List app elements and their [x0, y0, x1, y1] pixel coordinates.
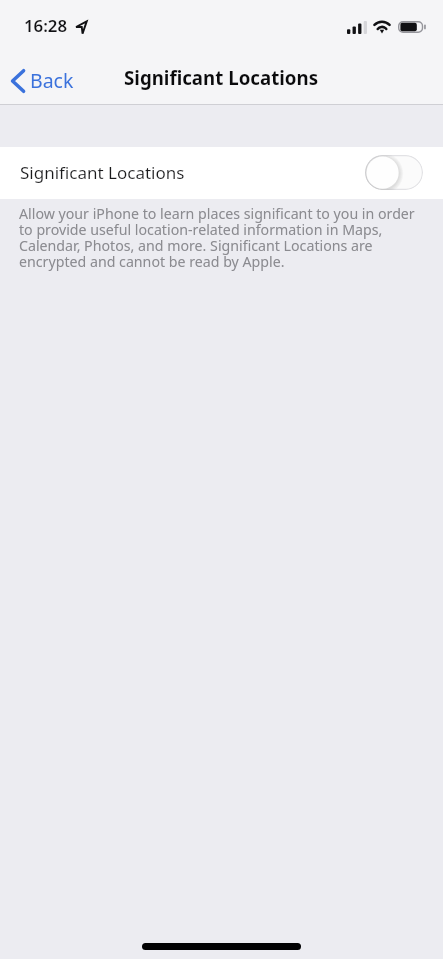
- staticText: Back: [30, 67, 74, 94]
- button[interactable]: Back: [0, 60, 88, 101]
- staticText: Significant Locations: [124, 65, 319, 90]
- staticText: 16:28: [24, 14, 68, 37]
- button[interactable]: Significant Locations: [0, 147, 443, 199]
- staticText: Allow your iPhone to learn places signif…: [19, 204, 421, 272]
- staticText: Significant Locations: [20, 161, 185, 184]
- button[interactable]: Significant Locations switch, off: [365, 155, 423, 190]
